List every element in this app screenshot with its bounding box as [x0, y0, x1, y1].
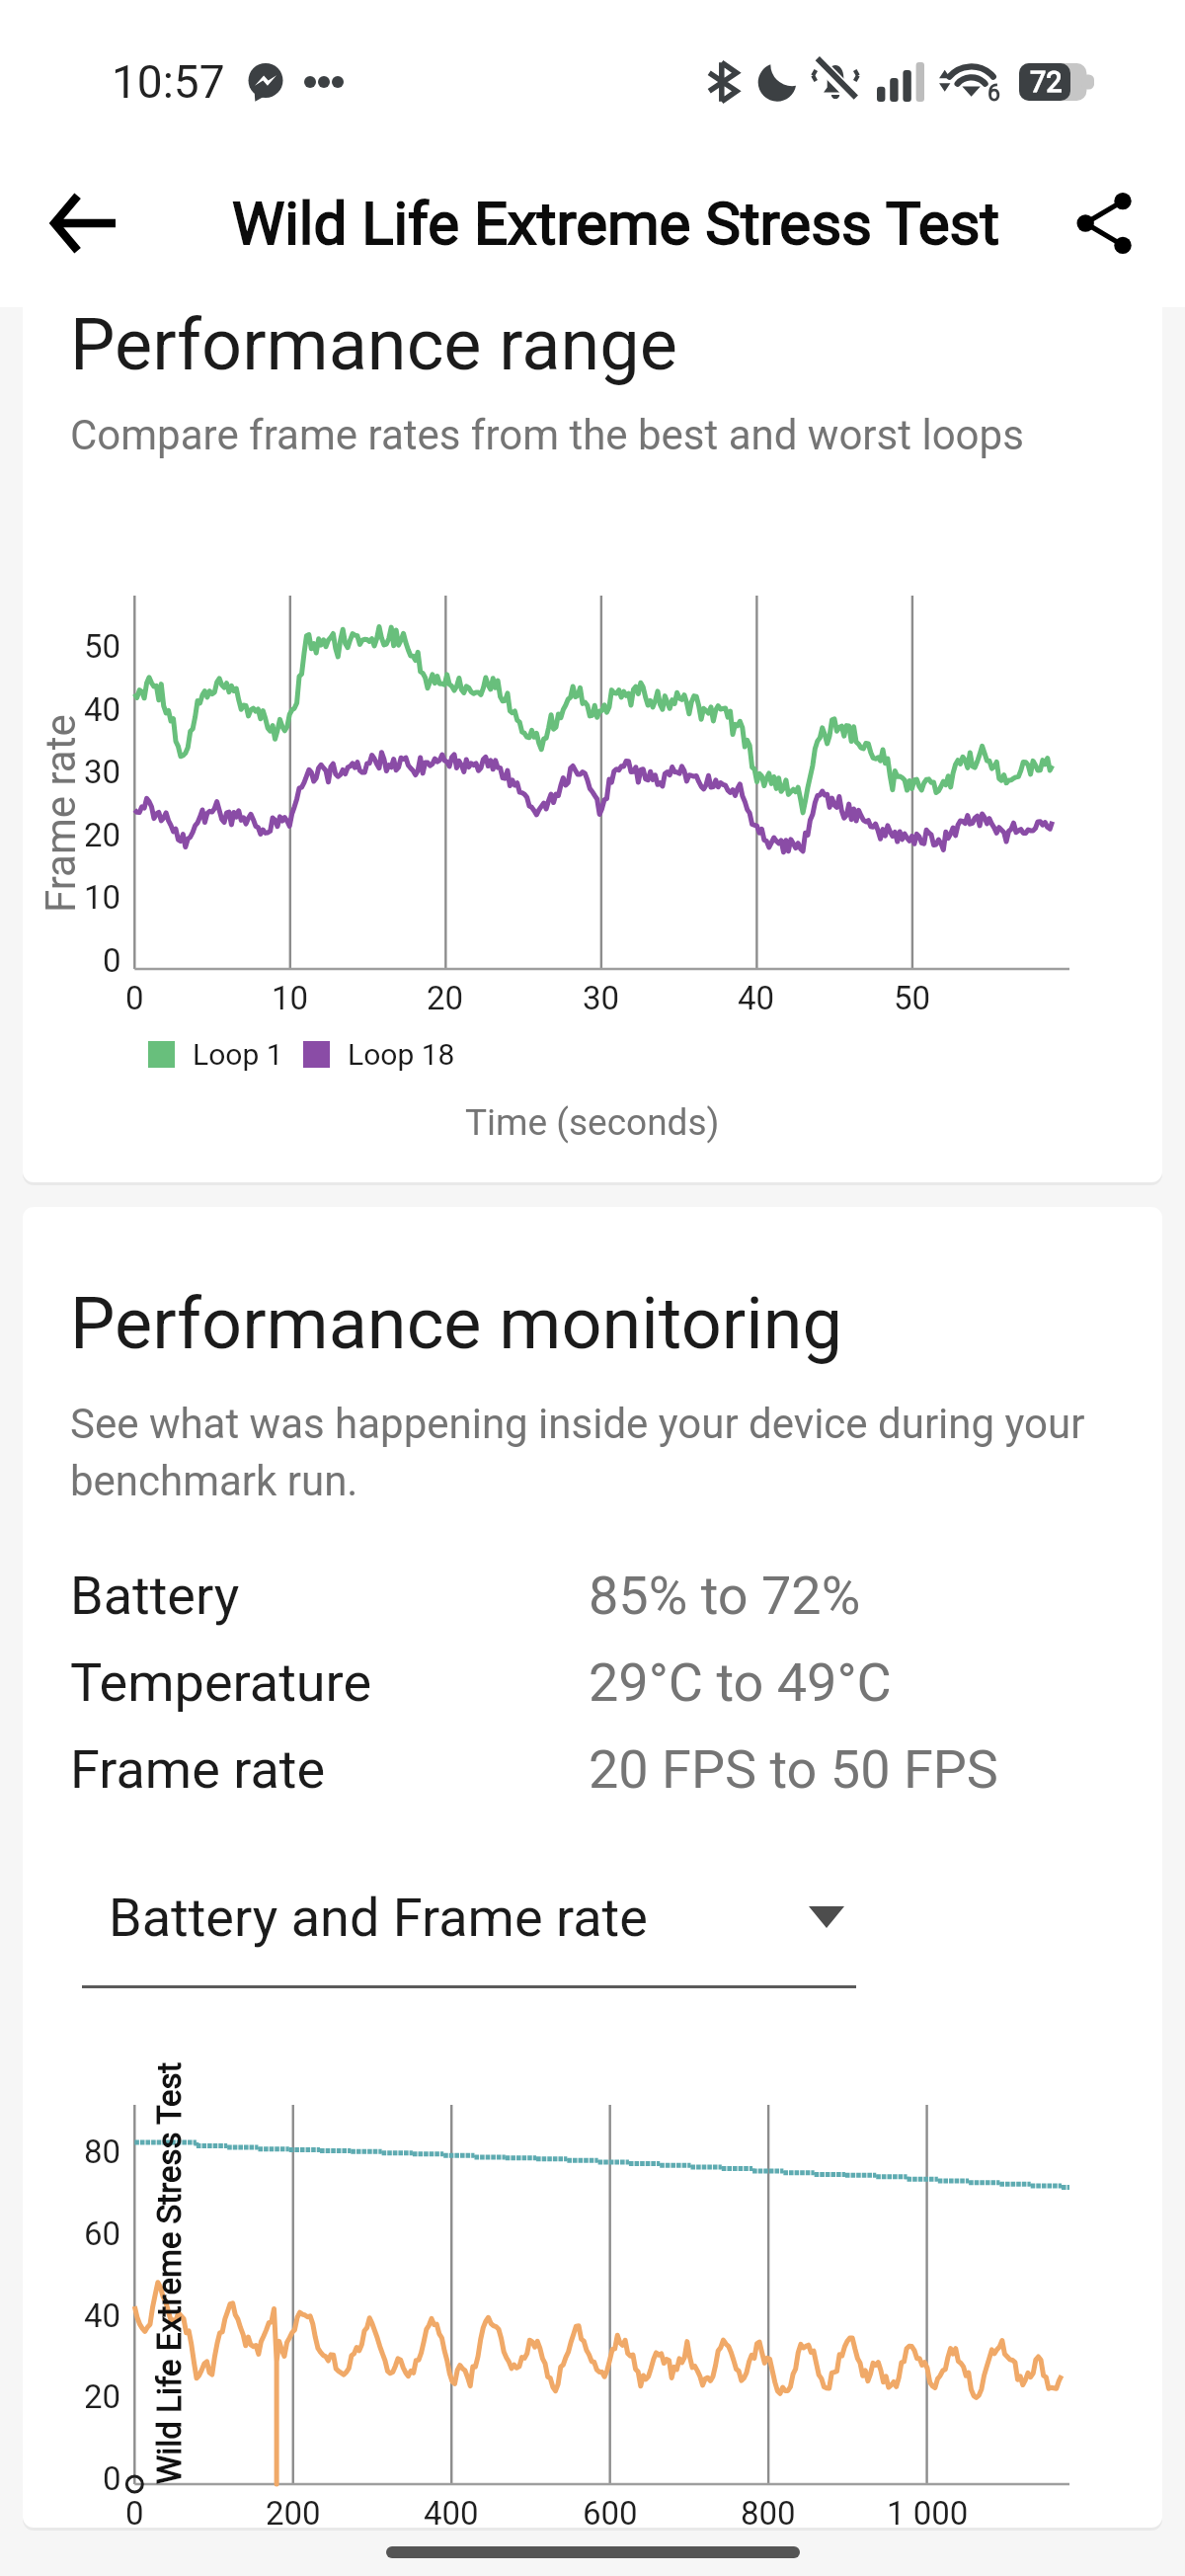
staticText: 50	[894, 979, 931, 1017]
staticText: 85% to 72%	[589, 1565, 861, 1627]
staticText: 20	[84, 2377, 121, 2416]
staticText: Battery	[70, 1565, 240, 1627]
button[interactable]: Back	[28, 167, 140, 280]
staticText: 29°C to 49°C	[589, 1651, 892, 1714]
staticText: Loop 1	[193, 1037, 283, 1072]
staticText: Frame rate	[37, 714, 85, 913]
staticText: Battery and Frame rate	[109, 1887, 648, 1949]
staticText: Performance monitoring	[70, 1282, 842, 1365]
staticText: 20	[427, 979, 464, 1017]
staticText: 30	[583, 979, 620, 1017]
staticText: 400	[424, 2494, 479, 2528]
staticText: 0	[103, 941, 121, 980]
staticText: 40	[84, 2296, 121, 2335]
staticText: 72	[1030, 65, 1063, 99]
staticText: 60	[84, 2214, 121, 2253]
staticText: 6	[987, 80, 1000, 107]
staticText: Compare frame rates from the best and wo…	[70, 411, 1024, 459]
button[interactable]: Battery and Frame rate	[82, 1870, 872, 1965]
staticText: 200	[266, 2494, 321, 2528]
staticText: 20	[84, 816, 121, 854]
staticText: Performance range	[70, 306, 677, 386]
staticText: 800	[741, 2494, 796, 2528]
button[interactable]: Share	[1051, 169, 1159, 278]
button[interactable]: Performance range	[23, 306, 1162, 1182]
staticText: 0	[103, 2459, 121, 2498]
staticText: 30	[84, 753, 121, 791]
staticText: 10	[272, 979, 309, 1017]
staticText: 20 FPS to 50 FPS	[589, 1738, 998, 1801]
staticText: Wild Life Extreme Stress Test	[232, 189, 1000, 258]
staticText: 50	[84, 627, 121, 666]
staticText: Wild Life Extreme Stress Test	[150, 2061, 189, 2484]
staticText: 10	[84, 878, 121, 917]
staticText: Loop 18	[348, 1037, 455, 1072]
staticText: 40	[738, 979, 775, 1017]
staticText: 40	[84, 690, 121, 729]
staticText: 600	[583, 2494, 638, 2528]
staticText: 0	[125, 979, 144, 1017]
staticText: See what was happening inside your devic…	[70, 1400, 1085, 1505]
staticText: 0	[125, 2494, 144, 2528]
staticText: 10:57	[112, 55, 225, 109]
staticText: Frame rate	[70, 1738, 326, 1801]
staticText: Time (seconds)	[465, 1101, 720, 1144]
button[interactable]: Performance monitoring	[23, 1207, 1162, 2528]
staticText: Temperature	[70, 1651, 372, 1714]
staticText: 80	[84, 2133, 121, 2171]
staticText: 1 000	[887, 2494, 969, 2528]
